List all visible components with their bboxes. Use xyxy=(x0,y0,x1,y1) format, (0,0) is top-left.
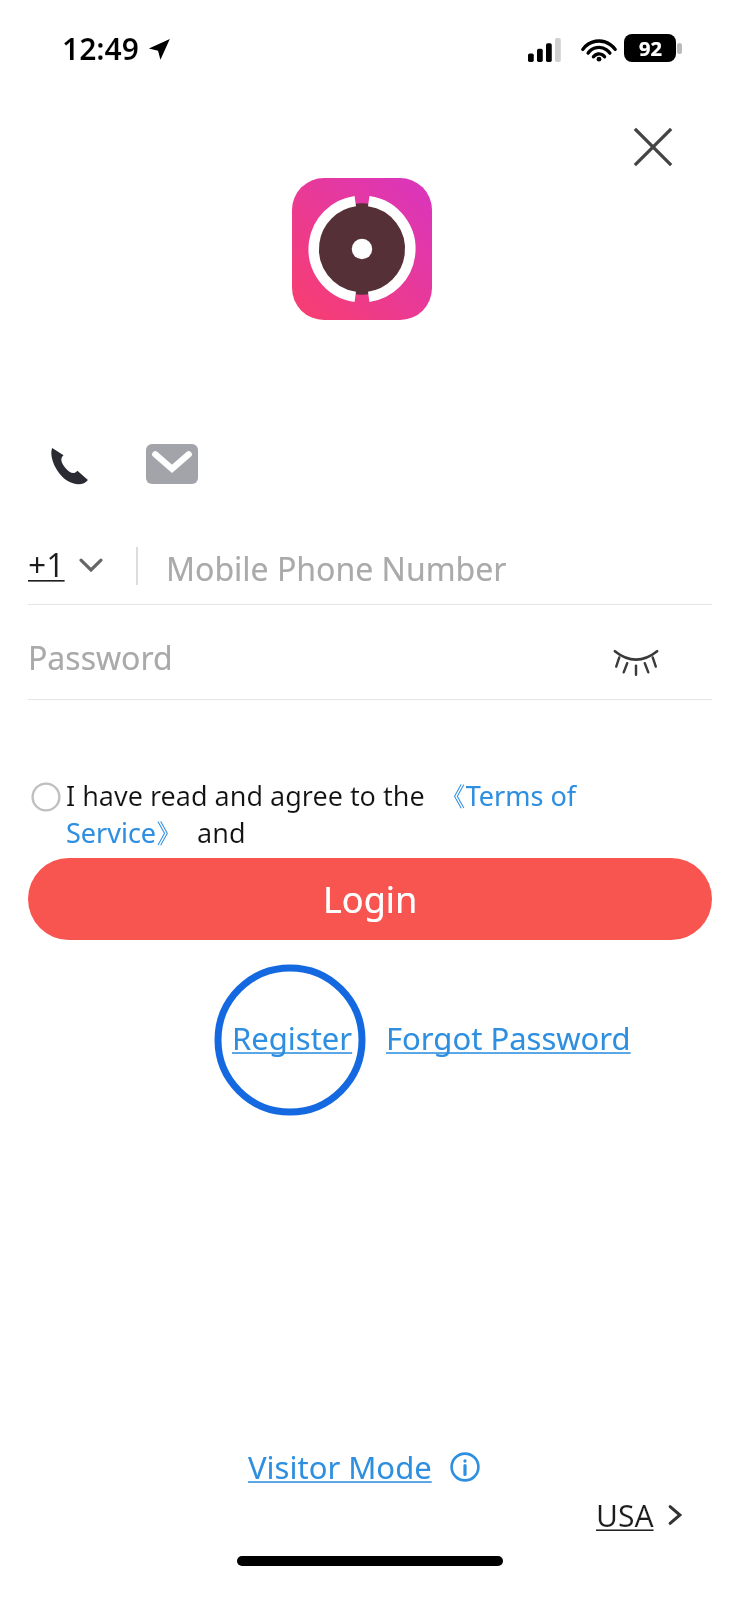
button[interactable]: Register xyxy=(232,1008,353,1068)
button[interactable]: Show password xyxy=(600,620,672,692)
button[interactable]: Forgot Password xyxy=(386,1008,631,1068)
staticText: Login xyxy=(323,875,418,924)
staticText: Visitor Mode xyxy=(248,1446,432,1488)
button[interactable]: Login xyxy=(28,858,712,940)
staticText: Password xyxy=(28,636,173,680)
staticText: USA xyxy=(596,1495,654,1536)
staticText: I have read and agree to the 《Terms of S… xyxy=(66,777,686,857)
button[interactable]: Email login xyxy=(133,425,211,503)
staticText: +1 xyxy=(28,543,65,587)
button[interactable]: USA xyxy=(596,1488,682,1542)
button[interactable]: Phone login xyxy=(30,425,108,503)
button[interactable]: Agree to terms xyxy=(20,771,72,823)
staticText: 92 xyxy=(639,35,662,62)
staticText: Register xyxy=(232,1017,353,1059)
button[interactable]: Close xyxy=(616,110,690,184)
staticText: 12:49 xyxy=(62,28,139,69)
button[interactable]: Visitor Mode xyxy=(248,1438,480,1496)
button[interactable]: +1 xyxy=(28,525,101,605)
staticText: Mobile Phone Number xyxy=(166,547,507,591)
staticText: Forgot Password xyxy=(386,1017,631,1059)
